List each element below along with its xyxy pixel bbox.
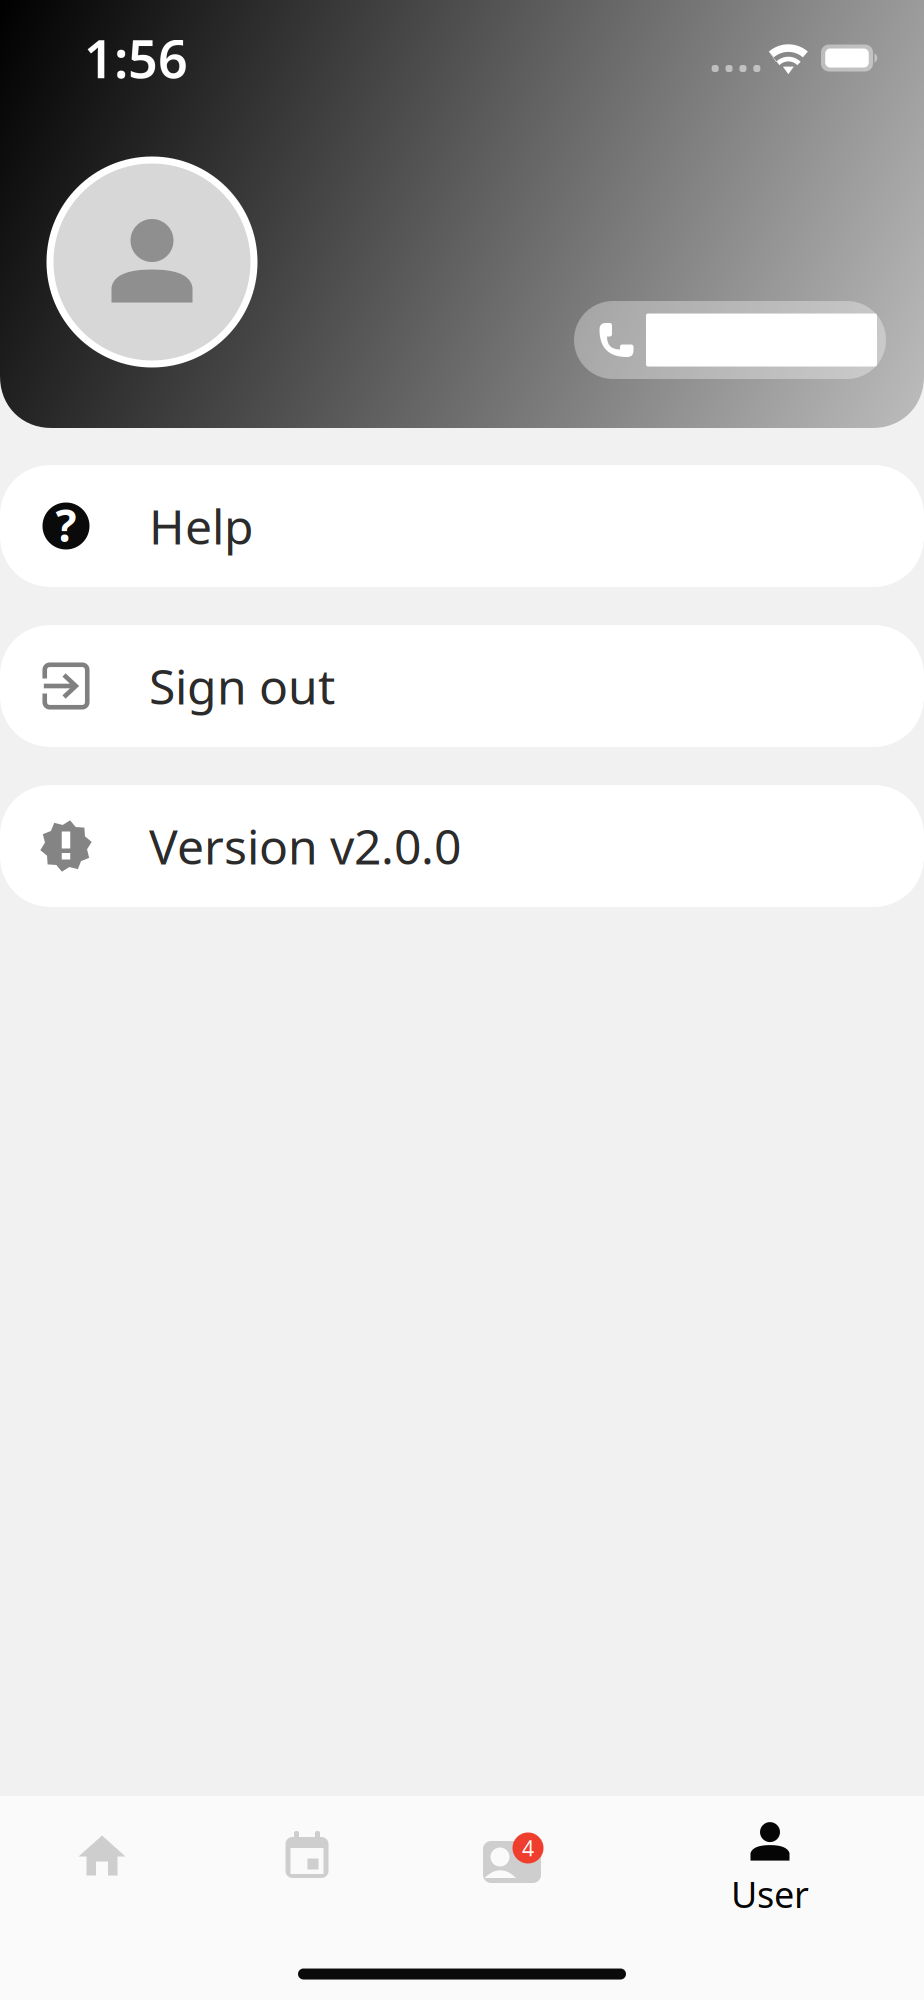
button[interactable]: Sign out bbox=[0, 625, 924, 747]
button[interactable]: Phone number bbox=[574, 301, 886, 379]
staticText: 1:56 bbox=[84, 23, 188, 93]
staticText: User bbox=[731, 1870, 809, 1918]
staticText: Version v2.0.0 bbox=[149, 814, 461, 878]
staticText: Sign out bbox=[149, 654, 335, 718]
button[interactable]: Version v2.0.0 bbox=[0, 785, 924, 907]
button[interactable]: ? bbox=[0, 465, 924, 587]
staticText: ? bbox=[55, 496, 76, 554]
staticText: Help bbox=[149, 494, 254, 558]
button[interactable]: Home bbox=[27, 1801, 177, 1911]
button[interactable]: Contacts, 4 unread bbox=[437, 1805, 587, 1915]
button[interactable]: User bbox=[690, 1815, 850, 1925]
staticText: 4 bbox=[522, 1834, 534, 1862]
button[interactable]: Calendar bbox=[232, 1801, 382, 1911]
